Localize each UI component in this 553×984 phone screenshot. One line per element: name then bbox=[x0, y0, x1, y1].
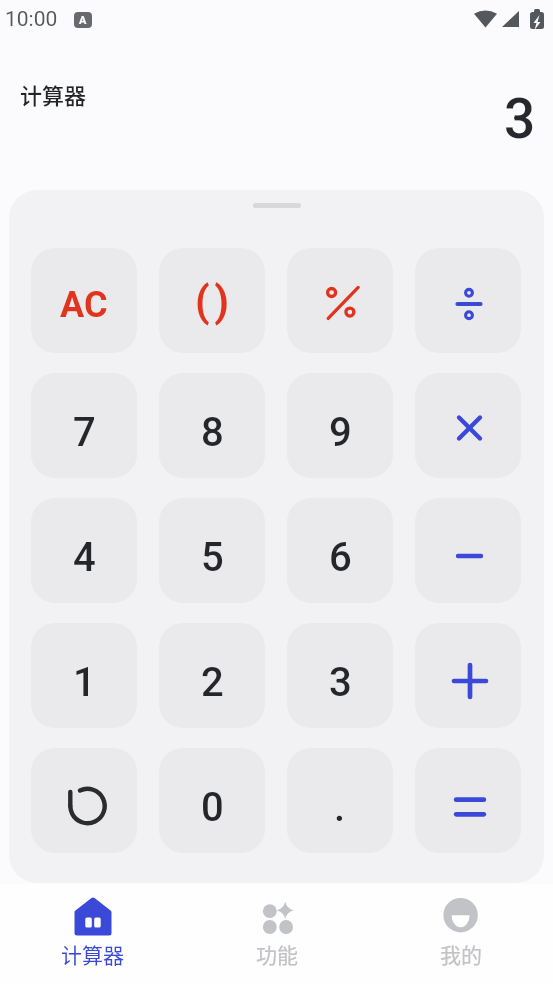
button[interactable]: 2 bbox=[159, 623, 265, 728]
button[interactable]: 7 bbox=[31, 373, 137, 478]
button[interactable] bbox=[415, 623, 521, 728]
button[interactable] bbox=[415, 373, 521, 478]
staticText: 4 bbox=[73, 534, 96, 581]
button[interactable]: 6 bbox=[287, 498, 393, 603]
staticText: A bbox=[79, 14, 87, 27]
button[interactable] bbox=[415, 248, 521, 353]
staticText: 功能 bbox=[256, 939, 298, 969]
staticText: 2 bbox=[201, 659, 224, 706]
staticText: () bbox=[195, 277, 234, 326]
button[interactable] bbox=[287, 248, 393, 353]
staticText: 6 bbox=[329, 534, 352, 581]
staticText: 0 bbox=[201, 784, 224, 831]
button[interactable] bbox=[415, 748, 521, 853]
button[interactable] bbox=[31, 748, 137, 853]
button[interactable]: 0 bbox=[159, 748, 265, 853]
staticText: 计算器 bbox=[61, 939, 124, 969]
button[interactable]: 8 bbox=[159, 373, 265, 478]
button[interactable]: . bbox=[287, 748, 393, 853]
staticText: 7 bbox=[73, 409, 96, 456]
staticText: 3 bbox=[329, 659, 352, 706]
button[interactable]: 5 bbox=[159, 498, 265, 603]
staticText: . bbox=[334, 784, 346, 831]
staticText: 5 bbox=[201, 534, 224, 581]
button[interactable]: 9 bbox=[287, 373, 393, 478]
staticText: 8 bbox=[201, 409, 224, 456]
button[interactable]: 1 bbox=[31, 623, 137, 728]
button[interactable]: 计算器 bbox=[0, 884, 185, 984]
staticText: 我的 bbox=[440, 939, 482, 969]
staticText: 3 bbox=[504, 87, 536, 151]
button[interactable]: AC bbox=[31, 248, 137, 353]
button[interactable]: 3 bbox=[287, 623, 393, 728]
staticText: 10:00 bbox=[5, 7, 58, 32]
staticText: 计算器 bbox=[20, 78, 87, 110]
button[interactable]: 4 bbox=[31, 498, 137, 603]
staticText: 1 bbox=[73, 659, 96, 706]
button[interactable]: 功能 bbox=[185, 884, 369, 984]
button[interactable]: 我的 bbox=[369, 884, 553, 984]
staticText: AC bbox=[60, 284, 108, 326]
button[interactable]: () bbox=[159, 248, 265, 353]
button[interactable] bbox=[415, 498, 521, 603]
staticText: 9 bbox=[329, 409, 352, 456]
